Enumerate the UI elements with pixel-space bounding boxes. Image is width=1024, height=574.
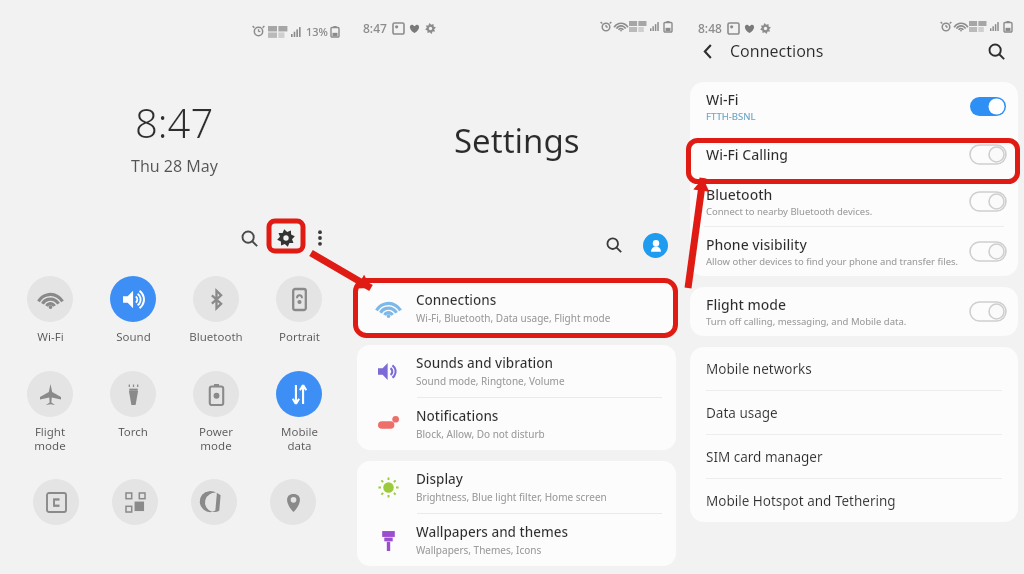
button[interactable]: Wi-Fi xyxy=(690,82,1018,131)
button[interactable]: Data usage xyxy=(690,391,1018,434)
button[interactable]: Tile xyxy=(112,479,158,525)
button[interactable]: Tile xyxy=(270,479,316,525)
staticText: Torch xyxy=(118,424,148,440)
button[interactable]: Wi-Fi toggle xyxy=(970,97,1006,116)
button[interactable]: Wi-Fi Calling toggle xyxy=(970,145,1006,164)
staticText: 13% xyxy=(306,24,328,39)
staticText: Data usage xyxy=(706,404,778,422)
staticText: Sounds and vibration xyxy=(416,354,553,372)
staticText: Wi-Fi xyxy=(706,90,739,109)
button[interactable]: Bluetooth xyxy=(690,177,1018,226)
button[interactable]: Bluetooth toggle xyxy=(970,192,1006,211)
button[interactable]: Phone visibility toggle xyxy=(970,242,1006,261)
staticText: Portrait xyxy=(279,329,320,345)
button[interactable]: Tile xyxy=(191,479,237,525)
staticText: Display xyxy=(416,470,463,488)
button[interactable]: Sounds and vibration xyxy=(357,345,676,397)
staticText: Bluetooth xyxy=(706,185,773,204)
staticText: 8:48 xyxy=(698,20,722,36)
staticText: Block, Allow, Do not disturb xyxy=(416,427,545,441)
button[interactable]: Search settings xyxy=(601,232,627,258)
staticText: Sound xyxy=(116,329,151,345)
button[interactable]: Notifications xyxy=(357,398,676,450)
button[interactable]: SIM card manager xyxy=(690,435,1018,478)
button[interactable]: Tile xyxy=(33,479,79,525)
staticText: Flight mode xyxy=(34,424,66,453)
button[interactable]: Wallpapers and themes xyxy=(357,514,676,566)
button[interactable]: Torch xyxy=(100,371,166,440)
staticText: Settings xyxy=(454,118,580,163)
staticText: Allow other devices to find your phone a… xyxy=(706,255,959,268)
staticText: Brightness, Blue light filter, Home scre… xyxy=(416,490,607,504)
staticText: Wallpapers, Themes, Icons xyxy=(416,543,542,557)
button[interactable]: Display xyxy=(357,461,676,513)
button[interactable]: Search xyxy=(235,224,263,252)
staticText: SIM card manager xyxy=(706,448,823,466)
staticText: Mobile Hotspot and Tethering xyxy=(706,492,896,510)
staticText: Turn off calling, messaging, and Mobile … xyxy=(706,315,907,328)
button[interactable]: Mobile Hotspot and Tethering xyxy=(690,479,1018,522)
staticText: Wallpapers and themes xyxy=(416,523,568,541)
staticText: Wi-Fi, Bluetooth, Data usage, Flight mod… xyxy=(416,311,611,325)
button[interactable]: Power mode xyxy=(183,371,249,453)
button[interactable]: Account xyxy=(643,233,668,258)
staticText: Notifications xyxy=(416,407,499,425)
button[interactable]: Search xyxy=(982,37,1010,65)
button[interactable]: Flight mode toggle xyxy=(970,302,1006,321)
button[interactable]: Flight mode xyxy=(17,371,83,453)
staticText: Power mode xyxy=(199,424,233,453)
button[interactable]: Bluetooth xyxy=(183,276,249,345)
staticText: Sound mode, Ringtone, Volume xyxy=(416,374,565,388)
button[interactable]: Wi-Fi xyxy=(17,276,83,345)
staticText: Connect to nearby Bluetooth devices. xyxy=(706,205,873,218)
staticText: 8:47 xyxy=(135,95,214,149)
staticText: Wi-Fi Calling xyxy=(706,145,788,164)
button[interactable]: Connections xyxy=(357,282,676,334)
staticText: Mobile networks xyxy=(706,360,812,378)
staticText: Mobile data xyxy=(281,424,318,453)
staticText: Connections xyxy=(730,40,824,62)
staticText: Flight mode xyxy=(706,295,786,314)
button[interactable]: Portrait xyxy=(266,276,332,345)
button[interactable]: Mobile data xyxy=(266,371,332,453)
staticText: Connections xyxy=(416,291,497,309)
button[interactable]: Phone visibility xyxy=(690,227,1018,276)
button[interactable]: Wi-Fi Calling xyxy=(690,131,1018,177)
staticText: Wi-Fi xyxy=(37,329,64,345)
button[interactable]: Settings xyxy=(271,225,301,251)
staticText: Phone visibility xyxy=(706,235,807,254)
button[interactable]: Mobile networks xyxy=(690,347,1018,390)
staticText: 8:47 xyxy=(363,20,387,36)
staticText: Thu 28 May xyxy=(131,155,218,177)
staticText: Bluetooth xyxy=(189,329,243,345)
staticText: FTTH-BSNL xyxy=(706,110,756,123)
button[interactable]: Flight mode xyxy=(690,287,1018,336)
button[interactable]: More options xyxy=(309,227,331,249)
button[interactable]: Sound xyxy=(100,276,166,345)
button[interactable]: Back xyxy=(694,37,722,65)
